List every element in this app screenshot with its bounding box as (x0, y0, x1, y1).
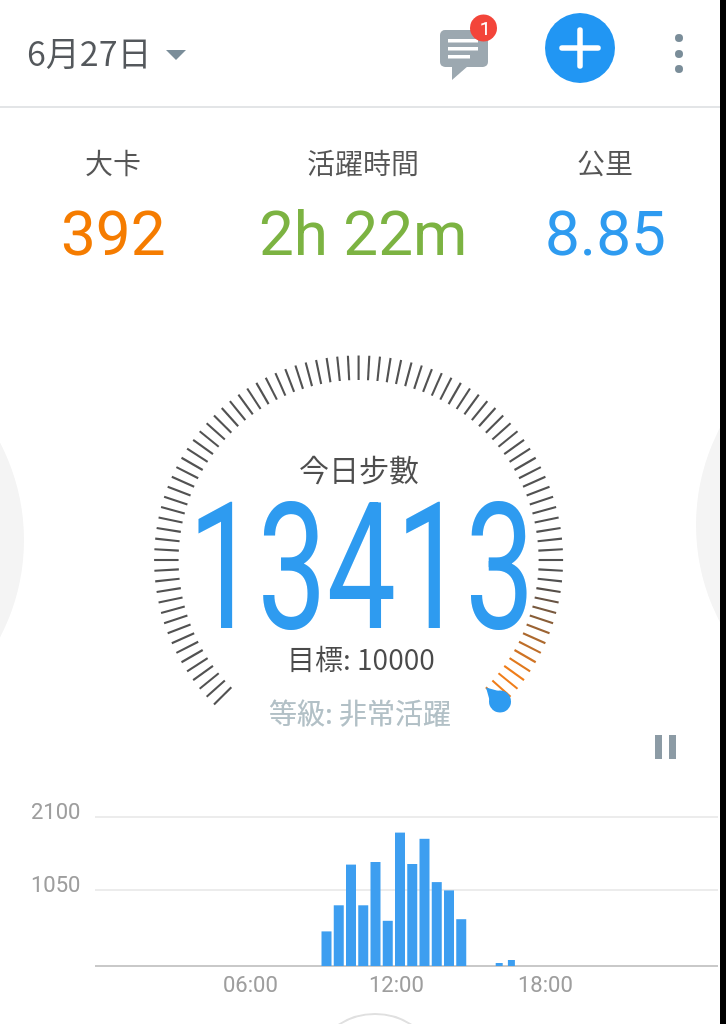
button[interactable] (545, 13, 615, 83)
staticText: 2h 22m (259, 197, 468, 270)
staticText: 06:00 (223, 972, 278, 998)
staticText: 8.85 (545, 197, 666, 270)
staticText: 392 (61, 197, 166, 270)
button[interactable]: 活躍時間 (242, 142, 484, 256)
staticText: 等級: 非常活躍 (269, 692, 452, 733)
staticText: 18:00 (518, 972, 573, 998)
staticText: 1 (480, 17, 491, 39)
staticText: 大卡 (85, 142, 142, 183)
staticText: 目標: 10000 (287, 638, 435, 679)
staticText: 1050 (31, 872, 81, 898)
staticText: 活躍時間 (307, 142, 420, 183)
staticText: 今日步數 (299, 446, 419, 489)
button[interactable]: 大卡 (0, 142, 234, 256)
staticText: 6月27日 (27, 27, 152, 76)
staticText: 公里 (577, 142, 634, 183)
staticText: 13413 (188, 465, 535, 671)
button[interactable]: 公里 (484, 142, 726, 256)
button[interactable]: 1 (432, 16, 498, 84)
button[interactable]: 6月27日 (27, 0, 152, 105)
button[interactable] (661, 18, 699, 90)
staticText: 2100 (31, 799, 81, 825)
staticText: 12:00 (369, 972, 424, 998)
button[interactable] (645, 725, 687, 767)
